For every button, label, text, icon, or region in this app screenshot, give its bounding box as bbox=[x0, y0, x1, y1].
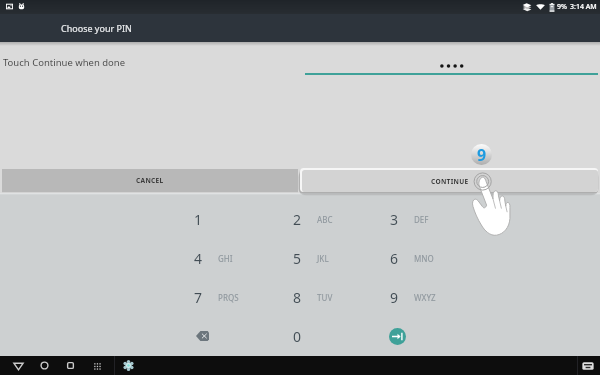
button[interactable]: CONTINUE bbox=[300, 168, 598, 192]
staticText: 7 bbox=[194, 288, 203, 307]
staticText: MNO bbox=[414, 253, 434, 264]
button[interactable]: CANCEL bbox=[2, 169, 298, 192]
staticText: DEF bbox=[414, 214, 429, 225]
button[interactable]: 9 bbox=[386, 285, 466, 309]
button[interactable]: 4 bbox=[190, 246, 270, 270]
button[interactable]: 1 bbox=[190, 207, 270, 231]
staticText: 6 bbox=[390, 249, 399, 268]
button[interactable]: Settings bbox=[118, 356, 138, 375]
staticText: 3:14 AM bbox=[570, 2, 597, 12]
staticText: CONTINUE bbox=[431, 177, 469, 186]
button[interactable]: Apps bbox=[87, 356, 107, 375]
staticText: PRQS bbox=[218, 292, 239, 303]
staticText: Touch Continue when done bbox=[3, 56, 126, 69]
button[interactable]: Enter bbox=[389, 328, 406, 345]
staticText: 8 bbox=[293, 288, 302, 307]
button[interactable]: 2 bbox=[289, 207, 369, 231]
button[interactable]: Home bbox=[34, 356, 54, 375]
staticText: 9 bbox=[390, 288, 399, 307]
button[interactable]: 6 bbox=[386, 246, 466, 270]
button[interactable]: Back bbox=[8, 356, 28, 375]
button[interactable]: 5 bbox=[289, 246, 369, 270]
staticText: TUV bbox=[317, 292, 333, 303]
button[interactable]: 3 bbox=[386, 207, 466, 231]
staticText: ABC bbox=[317, 214, 333, 225]
button[interactable]: 0 bbox=[289, 324, 305, 348]
staticText: 0 bbox=[293, 327, 302, 346]
button[interactable]: 7 bbox=[190, 285, 270, 309]
button[interactable]: Backspace bbox=[194, 328, 211, 344]
staticText: 9% bbox=[557, 2, 567, 12]
staticText: Choose your PIN bbox=[61, 22, 132, 34]
staticText: 2 bbox=[293, 210, 302, 229]
staticText: 9 bbox=[477, 144, 487, 165]
staticText: GHI bbox=[218, 253, 233, 264]
staticText: JKL bbox=[317, 253, 329, 264]
staticText: 4 bbox=[194, 249, 203, 268]
button[interactable]: Recents bbox=[60, 356, 80, 375]
staticText: 3 bbox=[390, 210, 399, 229]
staticText: 1 bbox=[194, 210, 203, 229]
button[interactable]: 8 bbox=[289, 285, 369, 309]
staticText: 5 bbox=[293, 249, 302, 268]
staticText: WXYZ bbox=[414, 292, 436, 303]
staticText: CANCEL bbox=[136, 176, 164, 185]
button[interactable]: Keyboard bbox=[578, 356, 598, 375]
